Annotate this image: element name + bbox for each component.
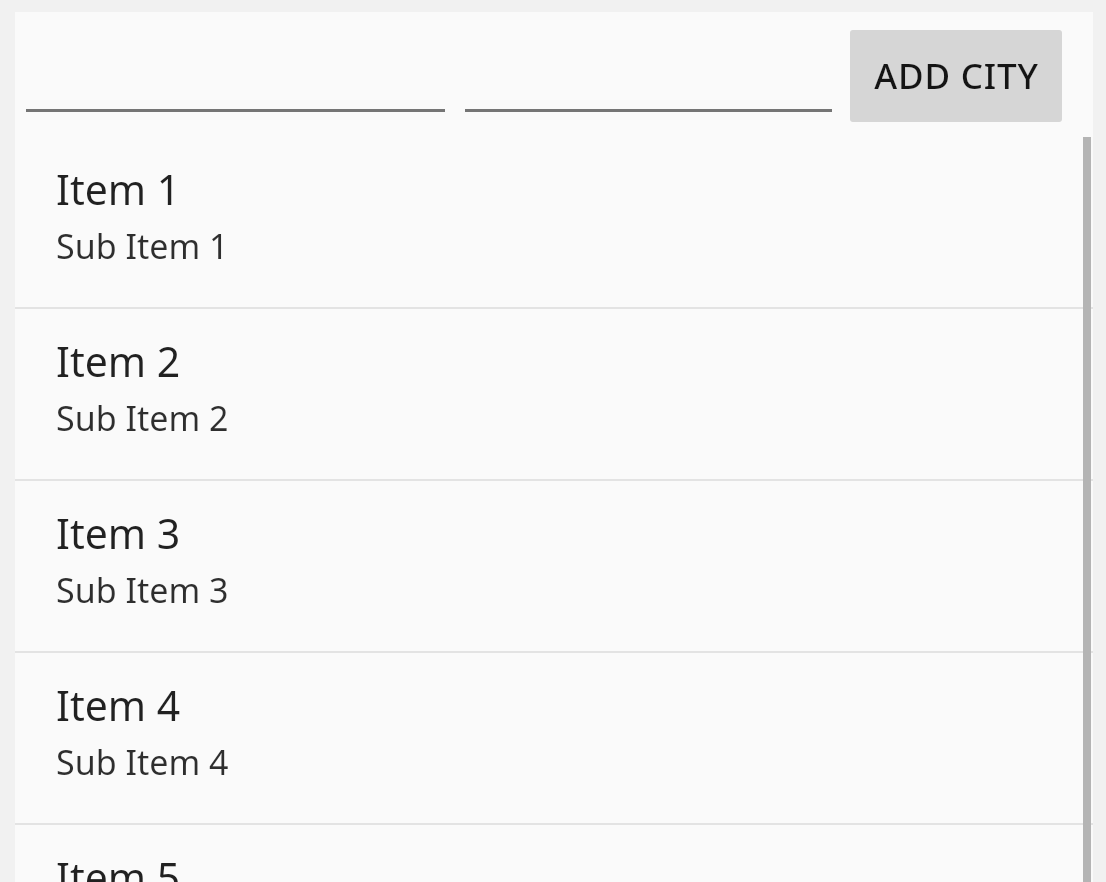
- staticText: ADD CITY: [874, 52, 1039, 100]
- button[interactable]: Item 1: [15, 137, 1093, 307]
- staticText: Sub Item 2: [56, 395, 229, 441]
- button[interactable]: Item 5: [15, 825, 1093, 882]
- button[interactable]: City name input: [26, 26, 445, 112]
- staticText: Item 2: [56, 333, 181, 389]
- staticText: Sub Item 3: [56, 567, 229, 613]
- button[interactable]: Item 3: [15, 481, 1093, 651]
- staticText: Sub Item 4: [56, 739, 229, 785]
- staticText: Sub Item 1: [56, 223, 229, 269]
- button[interactable]: Item 4: [15, 653, 1093, 823]
- staticText: Item 5: [56, 849, 181, 882]
- staticText: Item 4: [56, 677, 181, 733]
- button[interactable]: Country input: [465, 26, 832, 112]
- button[interactable]: ADD CITY: [850, 30, 1062, 122]
- staticText: Item 3: [56, 505, 181, 561]
- button[interactable]: Item 2: [15, 309, 1093, 479]
- staticText: Item 1: [56, 161, 181, 217]
